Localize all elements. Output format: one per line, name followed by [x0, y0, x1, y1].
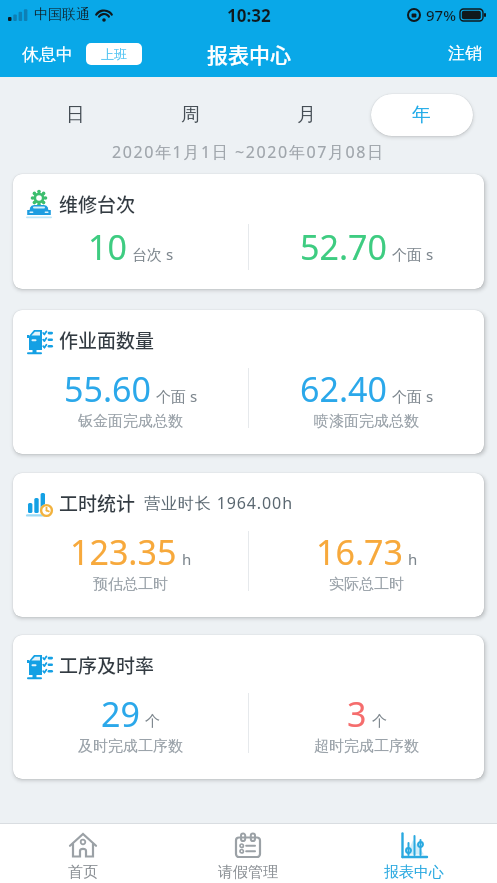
- staticText: 个: [145, 712, 160, 731]
- staticText: 3: [347, 691, 367, 737]
- staticText: 97%: [426, 5, 456, 25]
- staticText: 周: [181, 103, 200, 127]
- staticText: 上班: [101, 46, 127, 62]
- button[interactable]: 年: [386, 94, 456, 136]
- staticText: 日: [66, 103, 85, 127]
- staticText: 首页: [68, 863, 98, 882]
- staticText: 16.73: [316, 529, 403, 575]
- button[interactable]: [371, 94, 473, 136]
- staticText: 个: [372, 712, 387, 731]
- staticText: 29: [101, 691, 140, 737]
- button[interactable]: 首页: [0, 824, 165, 883]
- staticText: 营业时长 1964.00h: [144, 492, 293, 514]
- staticText: 预估总工时: [93, 575, 168, 594]
- button[interactable]: 周: [155, 94, 225, 136]
- staticText: 62.40: [300, 366, 387, 412]
- staticText: 维修台次: [59, 190, 136, 218]
- staticText: 10: [88, 224, 127, 270]
- staticText: 2020年1月1日 ~2020年07月08日: [112, 141, 385, 163]
- staticText: 中国联通: [34, 6, 90, 24]
- staticText: 55.60: [64, 366, 151, 412]
- staticText: 注销: [448, 43, 482, 64]
- staticText: 超时完成工序数: [314, 737, 419, 756]
- staticText: 个面 s: [392, 244, 434, 264]
- staticText: 工序及时率: [59, 651, 155, 679]
- staticText: 工时统计: [59, 489, 136, 517]
- staticText: 52.70: [300, 224, 387, 270]
- staticText: 10:32: [227, 4, 271, 27]
- button[interactable]: 请假管理: [165, 824, 331, 883]
- button[interactable]: 注销: [448, 43, 482, 64]
- staticText: 台次 s: [132, 244, 174, 264]
- staticText: 钣金面完成总数: [78, 412, 183, 431]
- staticText: 个面 s: [156, 386, 198, 406]
- button[interactable]: 日: [40, 94, 110, 136]
- staticText: 报表中心: [207, 39, 291, 69]
- staticText: 123.35: [70, 529, 177, 575]
- staticText: 及时完成工序数: [78, 737, 183, 756]
- button[interactable]: 报表中心: [331, 824, 497, 883]
- staticText: 实际总工时: [329, 575, 404, 594]
- staticText: 年: [412, 103, 431, 127]
- button[interactable]: 上班: [86, 43, 142, 65]
- staticText: 月: [297, 103, 316, 127]
- staticText: 休息中: [22, 44, 73, 65]
- staticText: h: [408, 549, 418, 569]
- staticText: 报表中心: [384, 863, 444, 882]
- staticText: 作业面数量: [59, 326, 155, 354]
- staticText: 个面 s: [392, 386, 434, 406]
- staticText: h: [182, 549, 192, 569]
- button[interactable]: 月: [271, 94, 341, 136]
- staticText: 喷漆面完成总数: [314, 412, 419, 431]
- staticText: 请假管理: [218, 863, 278, 882]
